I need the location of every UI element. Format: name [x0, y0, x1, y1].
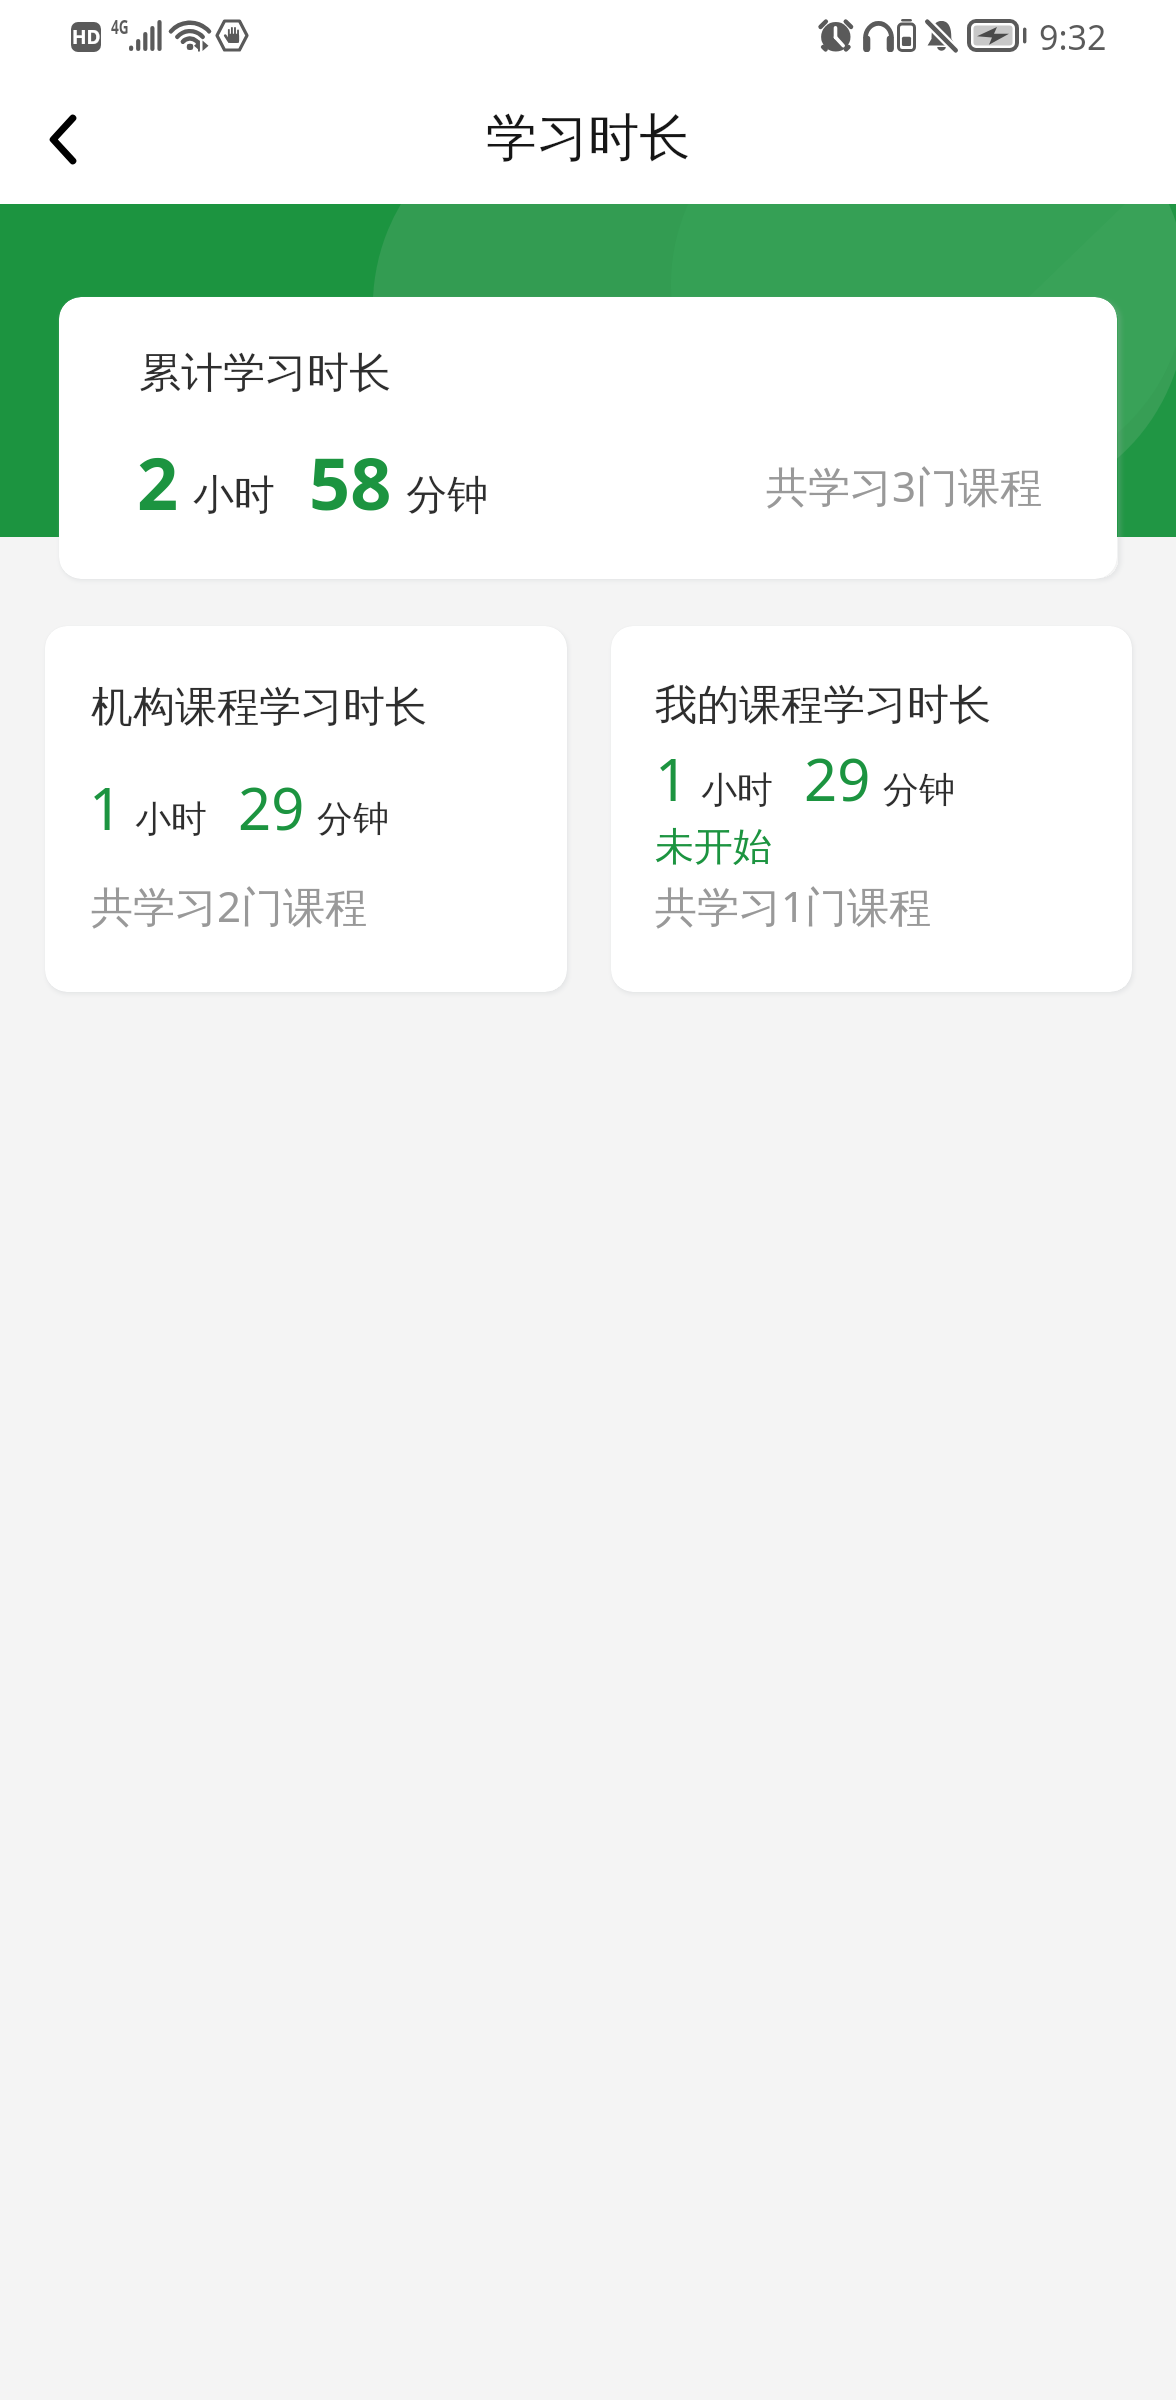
staticText: 共学习2门课程 [91, 877, 368, 934]
staticText: 共学习1门课程 [655, 877, 932, 934]
staticText: 小时 [193, 470, 275, 522]
staticText: 学习时长 [486, 106, 690, 170]
staticText: 小时 [701, 767, 773, 812]
staticText: 共学习3门课程 [766, 457, 1043, 514]
staticText: 29 [238, 768, 305, 847]
staticText: 分钟 [406, 470, 488, 522]
staticText: 未开始 [655, 822, 772, 871]
staticText: 1 [89, 768, 123, 847]
button[interactable]: Back [1, 77, 125, 201]
staticText: 2 [137, 433, 179, 531]
staticText: HD [72, 24, 101, 50]
staticText: 29 [804, 739, 871, 818]
button[interactable]: 累计学习时长 [59, 297, 1117, 579]
staticText: 分钟 [317, 796, 389, 841]
staticText: 分钟 [883, 767, 955, 812]
staticText: 58 [309, 433, 392, 531]
button[interactable]: 我的课程学习时长 [611, 626, 1132, 992]
staticText: 1 [655, 739, 689, 818]
staticText: 我的课程学习时长 [655, 679, 991, 732]
staticText: 小时 [135, 796, 207, 841]
staticText: 累计学习时长 [139, 347, 391, 400]
button[interactable]: 机构课程学习时长 [45, 626, 567, 992]
staticText: 机构课程学习时长 [91, 681, 427, 734]
staticText: 4G [111, 13, 129, 41]
staticText: 9:32 [1039, 14, 1107, 60]
